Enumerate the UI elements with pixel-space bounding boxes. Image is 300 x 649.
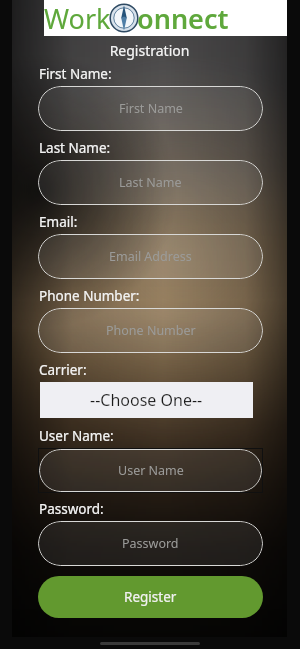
staticText: User Name: [118, 462, 184, 479]
staticText: Last Name: [119, 174, 182, 191]
button[interactable]: Email Address: [38, 234, 263, 279]
button[interactable]: --Choose One--: [40, 382, 253, 418]
staticText: Password: [122, 535, 179, 552]
staticText: Register: [124, 588, 177, 606]
staticText: User Name:: [39, 427, 114, 445]
staticText: Password:: [39, 500, 104, 518]
staticText: onnect: [137, 0, 229, 36]
staticText: First Name:: [39, 65, 112, 83]
staticText: Carrier:: [39, 361, 87, 379]
button[interactable]: Register: [38, 576, 263, 618]
button[interactable]: Last Name: [38, 160, 263, 205]
staticText: Registration: [12, 41, 287, 60]
staticText: Phone Number:: [39, 287, 140, 305]
staticText: --Choose One--: [90, 389, 203, 411]
staticText: Phone Number: [106, 322, 196, 339]
button[interactable]: User Name: [39, 449, 262, 492]
button[interactable]: Phone Number: [38, 308, 263, 353]
staticText: Email Address: [109, 248, 192, 265]
button[interactable]: First Name: [38, 86, 263, 131]
staticText: Work: [44, 0, 111, 36]
staticText: First Name: [119, 100, 183, 117]
button[interactable]: Password: [38, 521, 263, 566]
staticText: Email:: [39, 213, 78, 231]
staticText: Last Name:: [39, 139, 111, 157]
